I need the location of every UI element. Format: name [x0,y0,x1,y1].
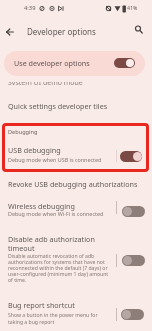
button[interactable] [0,141,152,169]
staticText: System UI demo mode [8,82,83,85]
button[interactable] [0,173,152,195]
staticText: 41% [127,4,138,11]
staticText: 4:39 [24,4,36,12]
button[interactable] [0,93,152,117]
staticText: Use developer options [14,58,90,68]
staticText: Developer options [27,26,96,37]
staticText: Debugging [8,128,38,136]
staticText: authorizations for systems that have not [8,259,105,266]
staticText: reconnected within the default (7 days) … [8,265,108,272]
button[interactable] [121,309,144,320]
staticText: Wireless debugging [8,201,75,211]
button[interactable] [131,21,146,36]
button[interactable] [0,81,152,91]
staticText: Disable adb authorization [8,234,95,244]
staticText: user-configured (minimum 1 day) amount [8,271,109,278]
staticText: Show a button in the power menu for [8,312,98,319]
button[interactable] [0,295,152,331]
button[interactable] [0,229,152,285]
button[interactable] [122,255,145,266]
staticText: USB debugging [8,145,61,155]
button[interactable]: Use developer options [4,51,145,76]
staticText: Disable automatic revocation of adb [8,253,95,260]
button[interactable] [3,25,17,39]
button[interactable] [0,197,152,223]
staticText: timeout [8,243,35,253]
staticText: Debug mode when Wi-Fi is connected [8,210,104,217]
button[interactable] [122,206,145,217]
staticText: taking a bug report [8,319,55,326]
staticText: Revoke USB debugging authorizations [8,179,138,189]
staticText: Debug mode when USB is connected [8,156,102,163]
staticText: of time. [8,277,27,284]
staticText: Quick settings developer tiles [8,101,108,111]
button[interactable] [114,58,135,68]
staticText: Bug report shortcut [8,300,75,310]
button[interactable] [120,151,142,162]
